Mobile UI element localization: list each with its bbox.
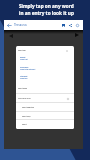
staticText: a smart new restaurant bbox=[20, 69, 36, 71]
staticText: a smart suit bbox=[20, 59, 28, 61]
button[interactable]: Play bbox=[75, 33, 79, 37]
staticText: smart bbox=[22, 123, 27, 125]
button[interactable]: smart adjective bbox=[16, 102, 74, 111]
button[interactable]: Bookmark bbox=[60, 22, 67, 29]
staticText: in an entry to look it up bbox=[19, 10, 74, 16]
staticText: Thesaurus bbox=[14, 23, 27, 27]
staticText: smart adj bbox=[18, 49, 26, 51]
staticText: fashionable bbox=[20, 66, 29, 68]
staticText: smart noun bbox=[18, 87, 27, 89]
staticText: a smart girl bbox=[20, 78, 28, 80]
button[interactable]: smart verb bbox=[16, 111, 74, 120]
staticText: elegant bbox=[20, 56, 26, 58]
button[interactable]: Look up in OALD bbox=[16, 93, 74, 102]
button[interactable]: Back bbox=[5, 21, 13, 29]
button[interactable]: Settings bbox=[74, 22, 81, 29]
staticText: Simply tap on any word bbox=[19, 3, 74, 9]
button[interactable]: Previous bbox=[9, 34, 13, 38]
button[interactable]: smart bbox=[16, 119, 74, 128]
staticText: smart adjective bbox=[22, 106, 35, 108]
staticText: Look up in OALD bbox=[18, 97, 31, 99]
staticText: smart verb bbox=[22, 115, 31, 117]
staticText: intelligent bbox=[20, 75, 28, 77]
button[interactable]: Share bbox=[67, 22, 74, 29]
